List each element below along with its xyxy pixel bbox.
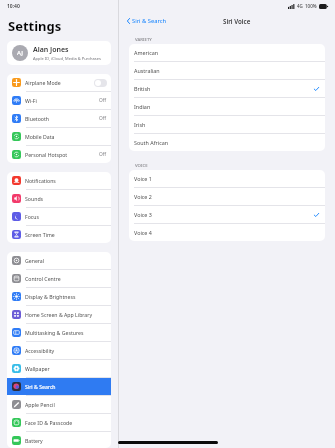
staticText: Settings <box>8 17 62 35</box>
button[interactable]: Australian <box>129 62 325 79</box>
button[interactable]: South African <box>129 134 325 151</box>
button[interactable]: Airplane Mode <box>7 74 111 91</box>
button[interactable]: Irish <box>129 116 325 133</box>
button[interactable]: Mobile Data <box>7 128 111 145</box>
staticText: Indian <box>134 103 151 110</box>
staticText: Mobile Data <box>25 133 55 140</box>
staticText: 10:40 <box>7 3 20 10</box>
button[interactable]: Screen Time <box>7 226 111 243</box>
button[interactable]: Home Screen & App Library <box>7 306 111 323</box>
button[interactable]: Sounds <box>7 190 111 207</box>
button[interactable]: Voice 3 <box>129 206 325 223</box>
staticText: Focus <box>25 213 40 220</box>
staticText: Apple Pencil <box>25 401 55 408</box>
staticText: Voice 1 <box>134 175 152 182</box>
staticText: Alan Jones <box>33 45 69 55</box>
staticText: British <box>134 85 151 92</box>
button[interactable]: Voice 2 <box>129 188 325 205</box>
staticText: Apple ID, iCloud, Media & Purchases <box>33 56 101 61</box>
staticText: Siri Voice <box>223 17 251 25</box>
button[interactable]: Wallpaper <box>7 360 111 377</box>
staticText: Accessibility <box>25 347 55 354</box>
staticText: Wallpaper <box>25 365 50 372</box>
button[interactable]: General <box>7 252 111 269</box>
button[interactable]: Wi-Fi <box>7 92 111 109</box>
button[interactable]: Bluetooth <box>7 110 111 127</box>
other: Selected <box>314 213 319 217</box>
staticText: 4G <box>297 3 303 9</box>
button[interactable]: Siri & Search <box>125 15 169 27</box>
button[interactable]: Indian <box>129 98 325 115</box>
button[interactable]: American <box>129 44 325 61</box>
staticText: General <box>25 257 45 264</box>
staticText: American <box>134 49 159 56</box>
button[interactable]: British <box>129 80 325 97</box>
staticText: Sounds <box>25 195 44 202</box>
other: Selected <box>314 87 319 91</box>
staticText: Voice 4 <box>134 229 152 236</box>
staticText: Notifications <box>25 177 56 184</box>
button[interactable]: Face ID & Passcode <box>7 414 111 431</box>
button[interactable]: Apple Pencil <box>7 396 111 413</box>
staticText: VARIETY <box>135 36 152 42</box>
button[interactable]: Personal Hotspot <box>7 146 111 163</box>
staticText: Siri & Search <box>132 17 167 25</box>
button[interactable]: AJ <box>7 41 111 65</box>
staticText: Bluetooth <box>25 115 50 122</box>
staticText: Australian <box>134 67 160 74</box>
button[interactable]: Battery <box>7 432 111 448</box>
staticText: Personal Hotspot <box>25 151 68 158</box>
staticText: Home Screen & App Library <box>25 311 93 318</box>
staticText: Airplane Mode <box>25 79 61 86</box>
staticText: Display & Brightness <box>25 293 76 300</box>
button[interactable]: Accessibility <box>7 342 111 359</box>
button[interactable]: Notifications <box>7 172 111 189</box>
button[interactable]: Multitasking & Gestures <box>7 324 111 341</box>
staticText: Screen Time <box>25 231 55 238</box>
staticText: South African <box>134 139 169 146</box>
staticText: VOICE <box>135 162 148 168</box>
button[interactable]: Voice 1 <box>129 170 325 187</box>
staticText: Wi-Fi <box>25 97 37 104</box>
button[interactable]: Display & Brightness <box>7 288 111 305</box>
staticText: Control Centre <box>25 275 61 282</box>
staticText: Voice 2 <box>134 193 152 200</box>
button[interactable]: Control Centre <box>7 270 111 287</box>
button[interactable]: Focus <box>7 208 111 225</box>
staticText: Battery <box>25 437 43 444</box>
staticText: Off <box>99 115 107 122</box>
staticText: 100% <box>305 3 317 9</box>
staticText: AJ <box>17 49 23 57</box>
staticText: Off <box>99 97 107 104</box>
button[interactable]: Siri & Search <box>7 378 111 395</box>
button[interactable]: Voice 4 <box>129 224 325 241</box>
staticText: Siri & Search <box>25 383 56 390</box>
staticText: Off <box>99 151 107 158</box>
staticText: Irish <box>134 121 146 128</box>
staticText: Multitasking & Gestures <box>25 329 84 336</box>
staticText: Voice 3 <box>134 211 152 218</box>
staticText: Face ID & Passcode <box>25 419 73 426</box>
